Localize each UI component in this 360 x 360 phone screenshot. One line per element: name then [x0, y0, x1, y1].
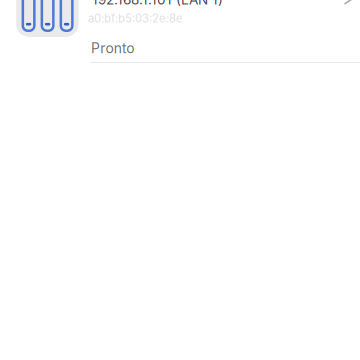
staticText: 192.168.1.101 (LAN 1): [92, 0, 223, 8]
staticText: a0:bf:b5:03:2e:8e: [88, 11, 183, 25]
button[interactable]: 192.168.1.101 (LAN 1), Pronto: [0, 0, 360, 62]
staticText: Pronto: [91, 40, 134, 57]
